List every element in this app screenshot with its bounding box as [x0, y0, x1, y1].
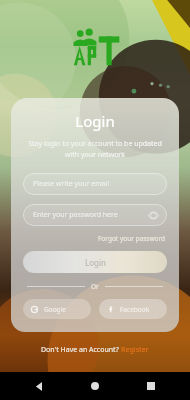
button[interactable]: Back — [30, 377, 48, 395]
button[interactable]: Google — [23, 299, 91, 319]
staticText: Register — [121, 345, 149, 355]
staticText: Enter your password here — [33, 210, 118, 220]
staticText: Forgot your password — [98, 234, 165, 243]
button[interactable]: Login — [23, 251, 167, 273]
staticText: Login — [85, 257, 106, 268]
button[interactable]: Enter your password here — [23, 204, 167, 226]
button[interactable]: Home — [86, 377, 104, 395]
staticText: Please write your email — [33, 179, 110, 189]
button[interactable]: Recents — [142, 377, 160, 395]
staticText: Login — [75, 111, 115, 131]
button[interactable]: Don't Have an Account? — [41, 345, 149, 355]
button[interactable]: Please write your email — [23, 173, 167, 195]
button[interactable]: Forgot your password — [96, 233, 167, 244]
staticText: Don't Have an Account? — [41, 345, 121, 355]
staticText: Google — [44, 305, 66, 314]
staticText: Or — [91, 282, 99, 291]
staticText: Stay login to your account to be updated… — [25, 139, 165, 159]
button[interactable]: Facebook — [99, 299, 167, 319]
button[interactable]: Show password — [147, 209, 160, 222]
staticText: Facebook — [120, 305, 150, 314]
